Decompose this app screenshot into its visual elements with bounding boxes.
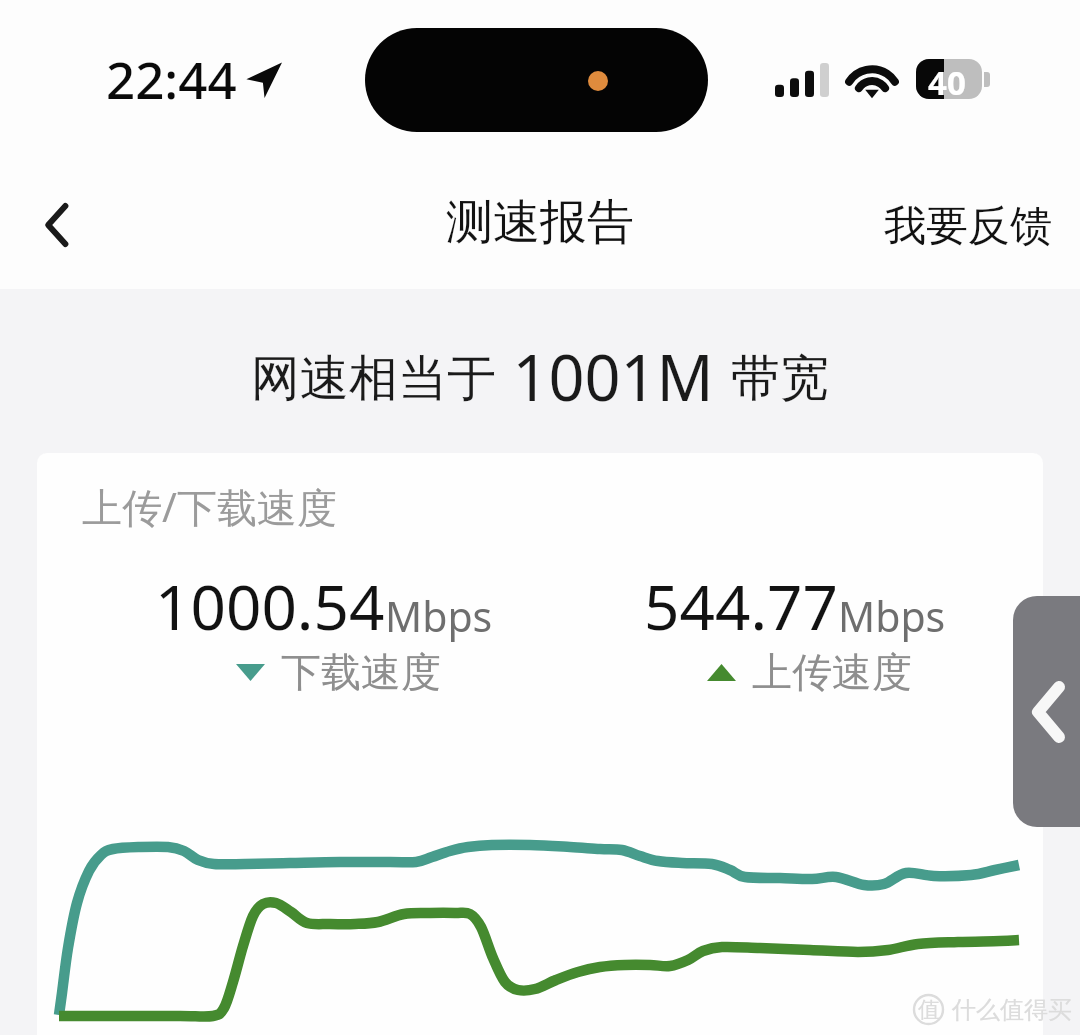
staticText: 值 <box>918 996 940 1024</box>
staticText: 什么值得买 <box>952 995 1072 1025</box>
staticText: 1000.54 <box>155 564 385 648</box>
staticText: 22:44 <box>106 44 237 113</box>
staticText: Mbps <box>838 588 946 644</box>
button[interactable]: 我要反馈 <box>884 200 1052 253</box>
button[interactable]: Back <box>18 185 98 265</box>
staticText: Mbps <box>385 588 493 644</box>
staticText: 测速报告 <box>446 193 634 252</box>
button[interactable]: Expand panel <box>1013 596 1080 827</box>
staticText: 下载速度 <box>281 647 441 697</box>
staticText: 上传/下载速度 <box>82 479 337 534</box>
staticText: 544.77 <box>644 564 838 648</box>
staticText: 1001M <box>496 334 731 420</box>
staticText: 带宽 <box>731 348 829 410</box>
staticText: 网速相当于 <box>251 348 496 410</box>
staticText: 40 <box>928 60 966 99</box>
staticText: 上传速度 <box>752 647 912 697</box>
